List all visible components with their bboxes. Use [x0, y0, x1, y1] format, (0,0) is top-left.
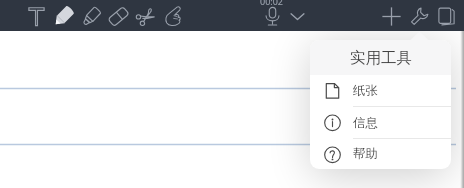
staticText: 实用工具	[350, 48, 412, 68]
button[interactable]: Collapse	[284, 3, 310, 29]
button[interactable]: Microphone	[259, 3, 285, 29]
staticText: 纸张	[353, 83, 378, 99]
button[interactable]: Pen tool	[50, 3, 76, 29]
button[interactable]: Hand	[159, 3, 185, 29]
button[interactable]: Add page	[378, 3, 404, 29]
button[interactable]: Lasso cut	[132, 3, 158, 29]
staticText: 信息	[353, 115, 378, 131]
button[interactable]: 帮助	[310, 139, 451, 169]
button[interactable]: Settings	[406, 3, 432, 29]
button[interactable]: 信息	[310, 107, 451, 138]
staticText: 帮助	[353, 146, 378, 162]
button[interactable]: Highlighter	[78, 3, 104, 29]
button[interactable]: 纸张	[310, 75, 451, 106]
button[interactable]: Text tool	[23, 3, 49, 29]
button[interactable]: Eraser	[105, 3, 131, 29]
button[interactable]: Pages	[433, 3, 459, 29]
staticText: 00:02	[260, 0, 284, 7]
